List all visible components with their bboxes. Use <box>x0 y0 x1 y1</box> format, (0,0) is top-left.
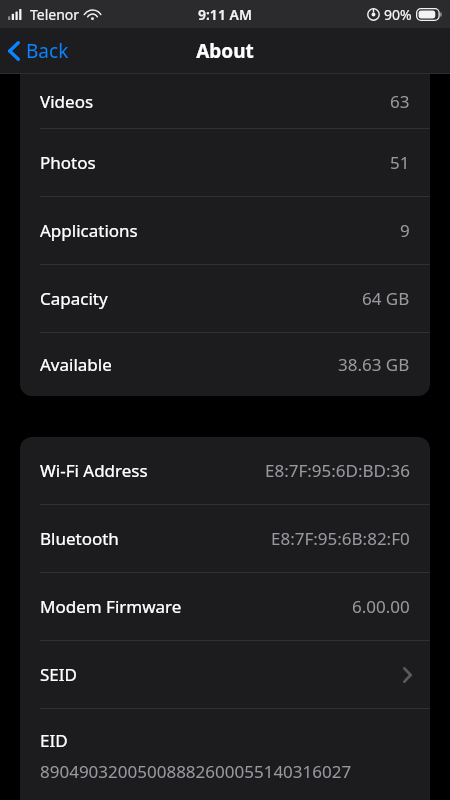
staticText: E8:7F:95:6D:BD:36 <box>265 459 410 482</box>
staticText: 9 <box>400 219 410 242</box>
other: Open SEID <box>403 667 412 683</box>
staticText: 63 <box>390 90 410 113</box>
staticText: Photos <box>40 151 96 174</box>
button[interactable]: Capacity <box>20 265 430 332</box>
staticText: Capacity <box>40 287 108 310</box>
staticText: Bluetooth <box>40 527 119 550</box>
button[interactable]: Available <box>20 333 430 396</box>
button[interactable]: SEID <box>20 641 430 708</box>
staticText: Wi-Fi Address <box>40 459 148 482</box>
button[interactable]: Videos <box>20 74 430 128</box>
staticText: 9:11 AM <box>198 5 252 24</box>
staticText: SEID <box>40 663 77 686</box>
staticText: 89049032005008882600055140316027 <box>40 760 352 783</box>
staticText: 64 GB <box>362 287 410 310</box>
staticText: 90% <box>384 5 412 24</box>
button[interactable]: EID <box>20 709 430 795</box>
staticText: Available <box>40 353 112 376</box>
staticText: 51 <box>390 151 410 174</box>
staticText: Telenor <box>30 5 80 24</box>
staticText: EID <box>40 729 68 752</box>
button[interactable]: Applications <box>20 197 430 264</box>
button[interactable]: Back <box>0 32 81 70</box>
staticText: E8:7F:95:6B:82:F0 <box>271 527 410 550</box>
button[interactable]: Photos <box>20 129 430 196</box>
staticText: 6.00.00 <box>352 595 410 618</box>
staticText: Back <box>26 38 69 64</box>
staticText: About <box>196 38 254 64</box>
button[interactable]: Wi-Fi Address <box>20 437 430 504</box>
staticText: Applications <box>40 219 138 242</box>
staticText: Videos <box>40 90 94 113</box>
staticText: 38.63 GB <box>338 353 410 376</box>
staticText: Modem Firmware <box>40 595 182 618</box>
button[interactable]: Modem Firmware <box>20 573 430 640</box>
button[interactable]: Bluetooth <box>20 505 430 572</box>
